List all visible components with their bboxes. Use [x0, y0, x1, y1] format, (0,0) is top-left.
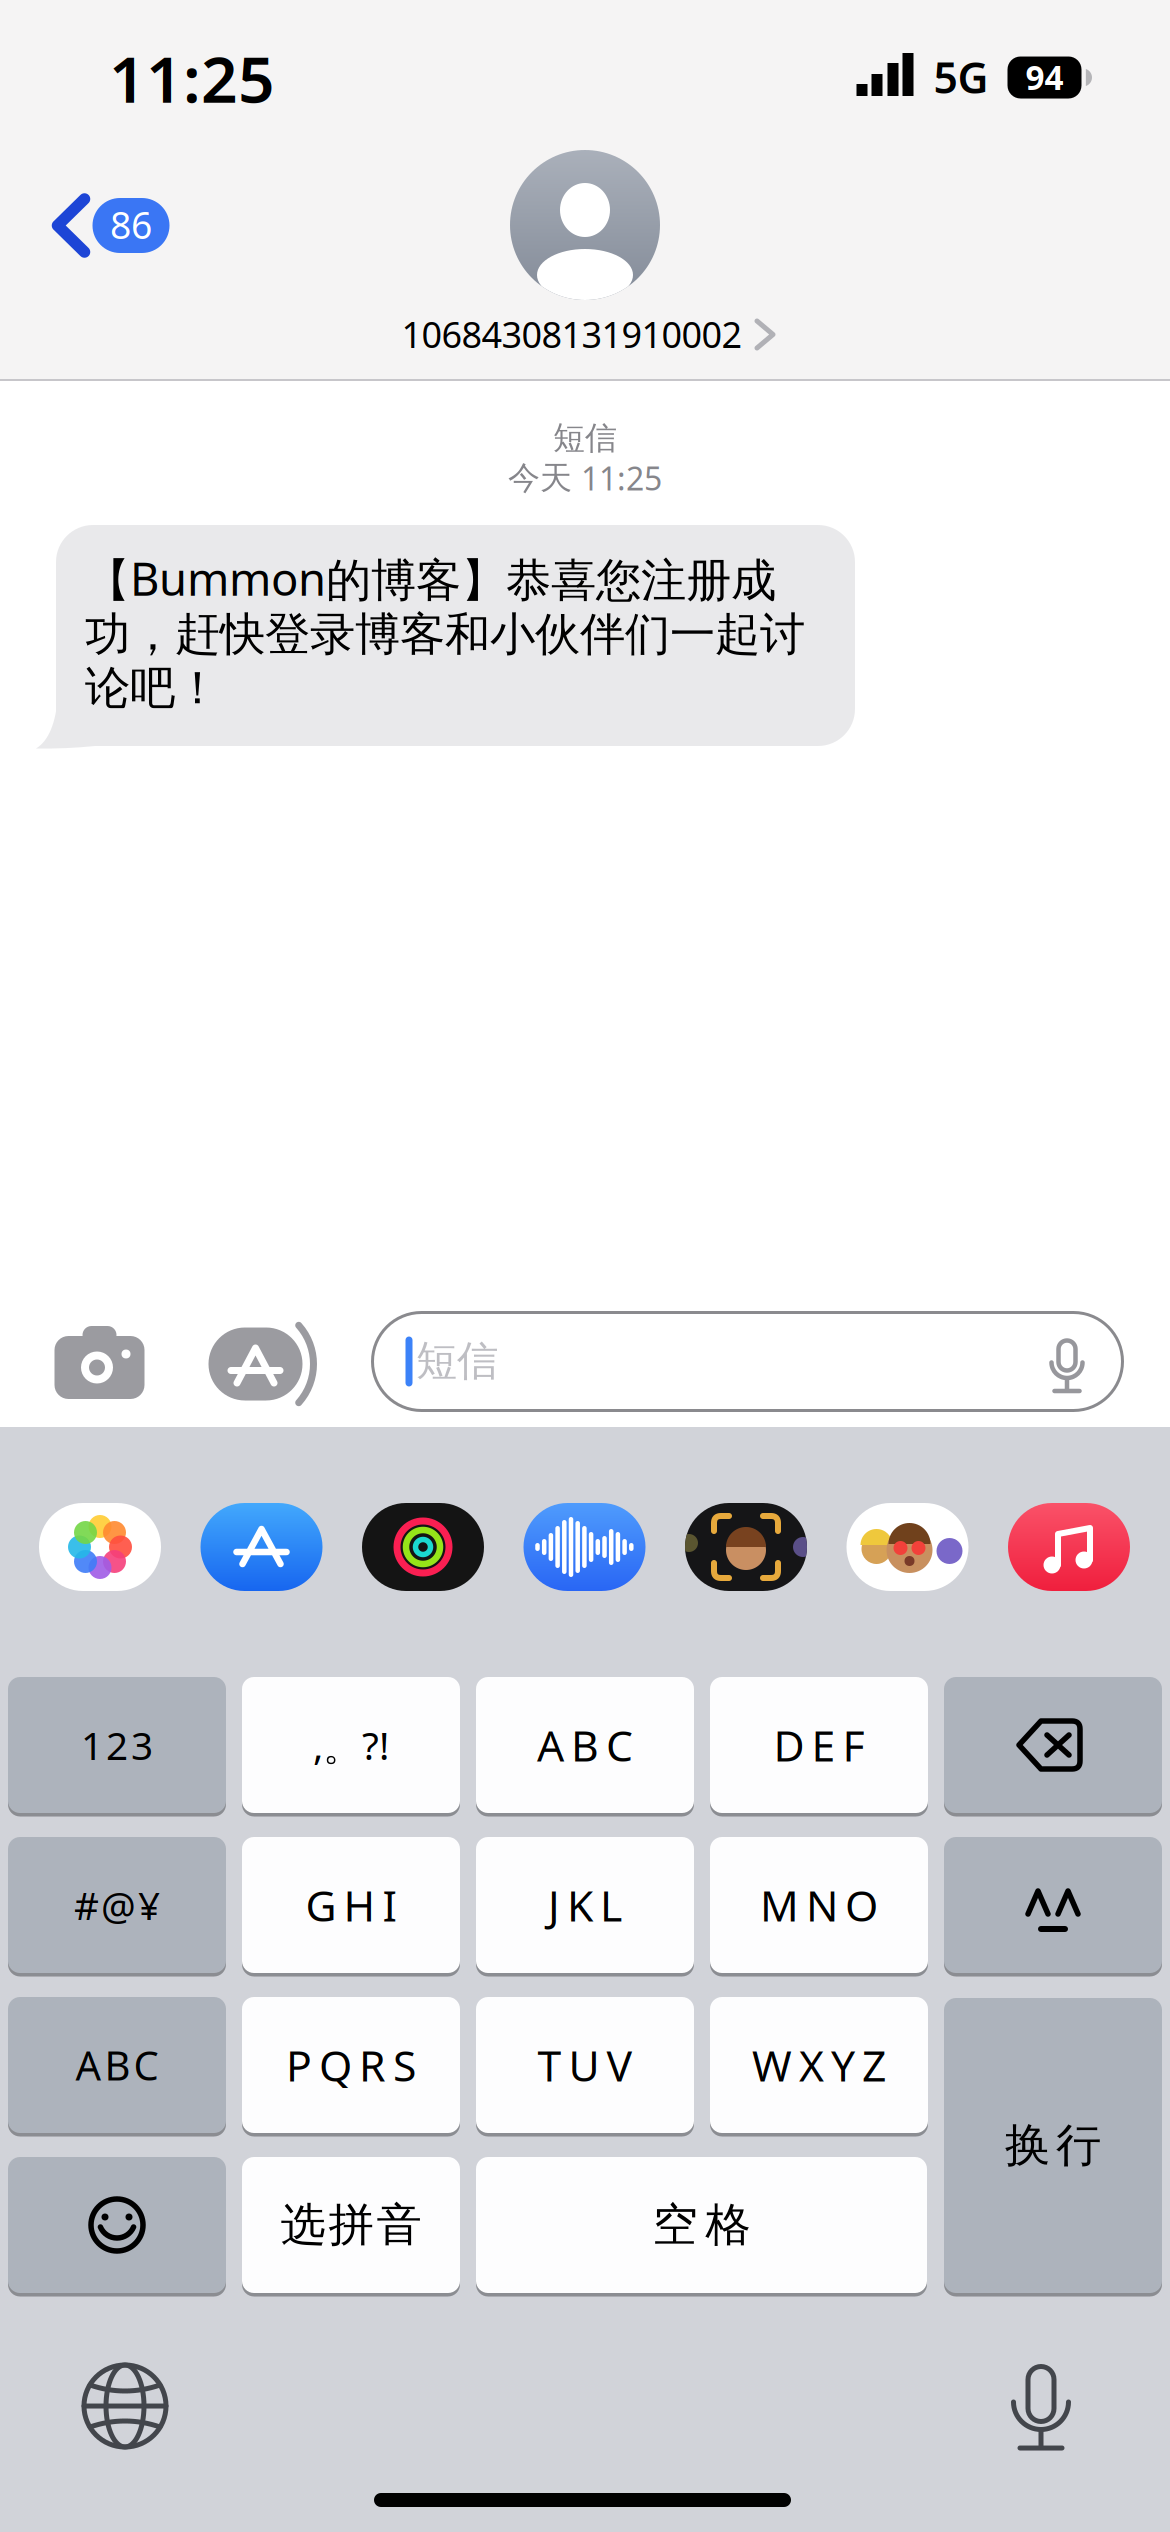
button[interactable]: Dictation	[996, 2349, 1086, 2459]
button[interactable]: Music	[1008, 1503, 1130, 1591]
button[interactable]: JKL	[476, 1837, 694, 1973]
button[interactable]: Fitness	[362, 1503, 484, 1591]
staticText: 11:25	[109, 35, 275, 120]
staticText: WXYZ	[752, 2037, 886, 2093]
staticText: 短信	[553, 418, 617, 458]
button[interactable]: Emoji	[8, 2157, 226, 2293]
staticText: 【Bummon的博客】恭喜您注册成	[85, 548, 776, 608]
staticText: 空格	[652, 2197, 750, 2253]
button[interactable]: Back	[51, 190, 175, 261]
staticText: GHI	[305, 1877, 396, 1933]
button[interactable]: ABC	[476, 1677, 694, 1813]
button[interactable]: Voice Memos	[523, 1503, 645, 1591]
button[interactable]: 空格	[476, 2157, 927, 2293]
button[interactable]: Camera effects	[685, 1503, 807, 1591]
button[interactable]: Kaomoji	[944, 1837, 1162, 1973]
staticText: 换行	[1005, 2118, 1101, 2173]
button[interactable]: Memoji stickers	[846, 1503, 968, 1591]
button[interactable]: Delete	[944, 1677, 1162, 1813]
staticText: 10684308131910002	[401, 310, 742, 358]
staticText: 94	[1025, 55, 1063, 99]
staticText: 86	[110, 200, 152, 249]
staticText: PQRS	[286, 2037, 416, 2093]
staticText: JKL	[548, 1877, 622, 1933]
button[interactable]: DEF	[710, 1677, 928, 1813]
staticText: 5G	[933, 49, 988, 105]
button[interactable]: ,。?!	[242, 1677, 460, 1813]
staticText: 短信	[416, 1336, 498, 1386]
staticText: #@¥	[74, 1879, 160, 1931]
staticText: TUV	[537, 2037, 632, 2093]
button[interactable]: App Store	[200, 1503, 322, 1591]
staticText: 选拼音	[280, 2197, 421, 2253]
button[interactable]: 换行	[944, 1998, 1162, 2293]
staticText: DEF	[773, 1717, 864, 1773]
button[interactable]: WXYZ	[710, 1997, 928, 2133]
staticText: ABC	[75, 2038, 158, 2091]
staticText: 123	[81, 1719, 153, 1771]
staticText: 论吧！	[85, 660, 220, 716]
button[interactable]: Camera	[49, 1322, 149, 1406]
staticText: 11:25	[581, 457, 662, 499]
button[interactable]: GHI	[242, 1837, 460, 1973]
button[interactable]: 选拼音	[242, 2157, 460, 2293]
button[interactable]: Photos	[39, 1503, 161, 1591]
button[interactable]: PQRS	[242, 1997, 460, 2133]
button[interactable]: ABC	[8, 1997, 226, 2133]
staticText: 今天	[508, 458, 572, 498]
button[interactable]: iMessage apps	[203, 1322, 321, 1406]
staticText: ABC	[537, 1717, 633, 1773]
button[interactable]: Next keyboard	[77, 2358, 173, 2454]
button[interactable]: 123	[8, 1677, 226, 1813]
staticText: ,。?!	[313, 1719, 389, 1771]
staticText: MNO	[760, 1877, 878, 1933]
staticText: 功，赶快登录博客和小伙伴们一起讨	[85, 606, 805, 662]
button[interactable]: MNO	[710, 1837, 928, 1973]
button[interactable]: #@¥	[8, 1837, 226, 1973]
button[interactable]: Contact 10684308131910002	[385, 144, 785, 360]
button[interactable]: 短信 message field	[371, 1311, 1124, 1412]
button[interactable]: TUV	[476, 1997, 694, 2133]
